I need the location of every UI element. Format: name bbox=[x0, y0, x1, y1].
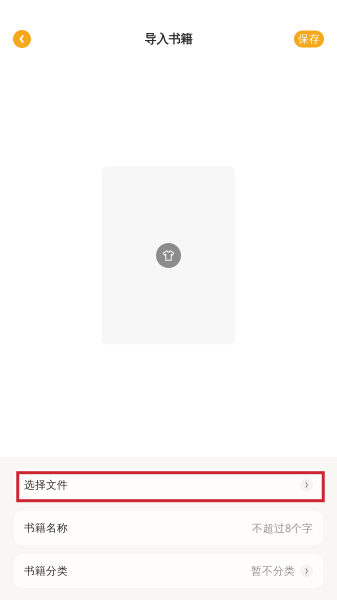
staticText: 不超过8个字 bbox=[252, 521, 313, 535]
staticText: 书籍名称 bbox=[24, 521, 68, 534]
button[interactable]: 返回 bbox=[7, 24, 37, 54]
staticText: 选择文件 bbox=[24, 478, 68, 491]
button[interactable]: 书籍名称 bbox=[14, 511, 323, 545]
button[interactable]: 选择封面 bbox=[102, 166, 235, 344]
button[interactable]: 选择文件 bbox=[14, 468, 323, 502]
staticText: 保存 bbox=[298, 32, 320, 45]
button[interactable]: 保存 bbox=[294, 24, 337, 53]
staticText: 导入书籍 bbox=[144, 32, 192, 46]
staticText: 书籍分类 bbox=[24, 564, 68, 577]
button[interactable]: 书籍分类 bbox=[14, 554, 323, 588]
staticText: 暂不分类 bbox=[251, 564, 295, 577]
